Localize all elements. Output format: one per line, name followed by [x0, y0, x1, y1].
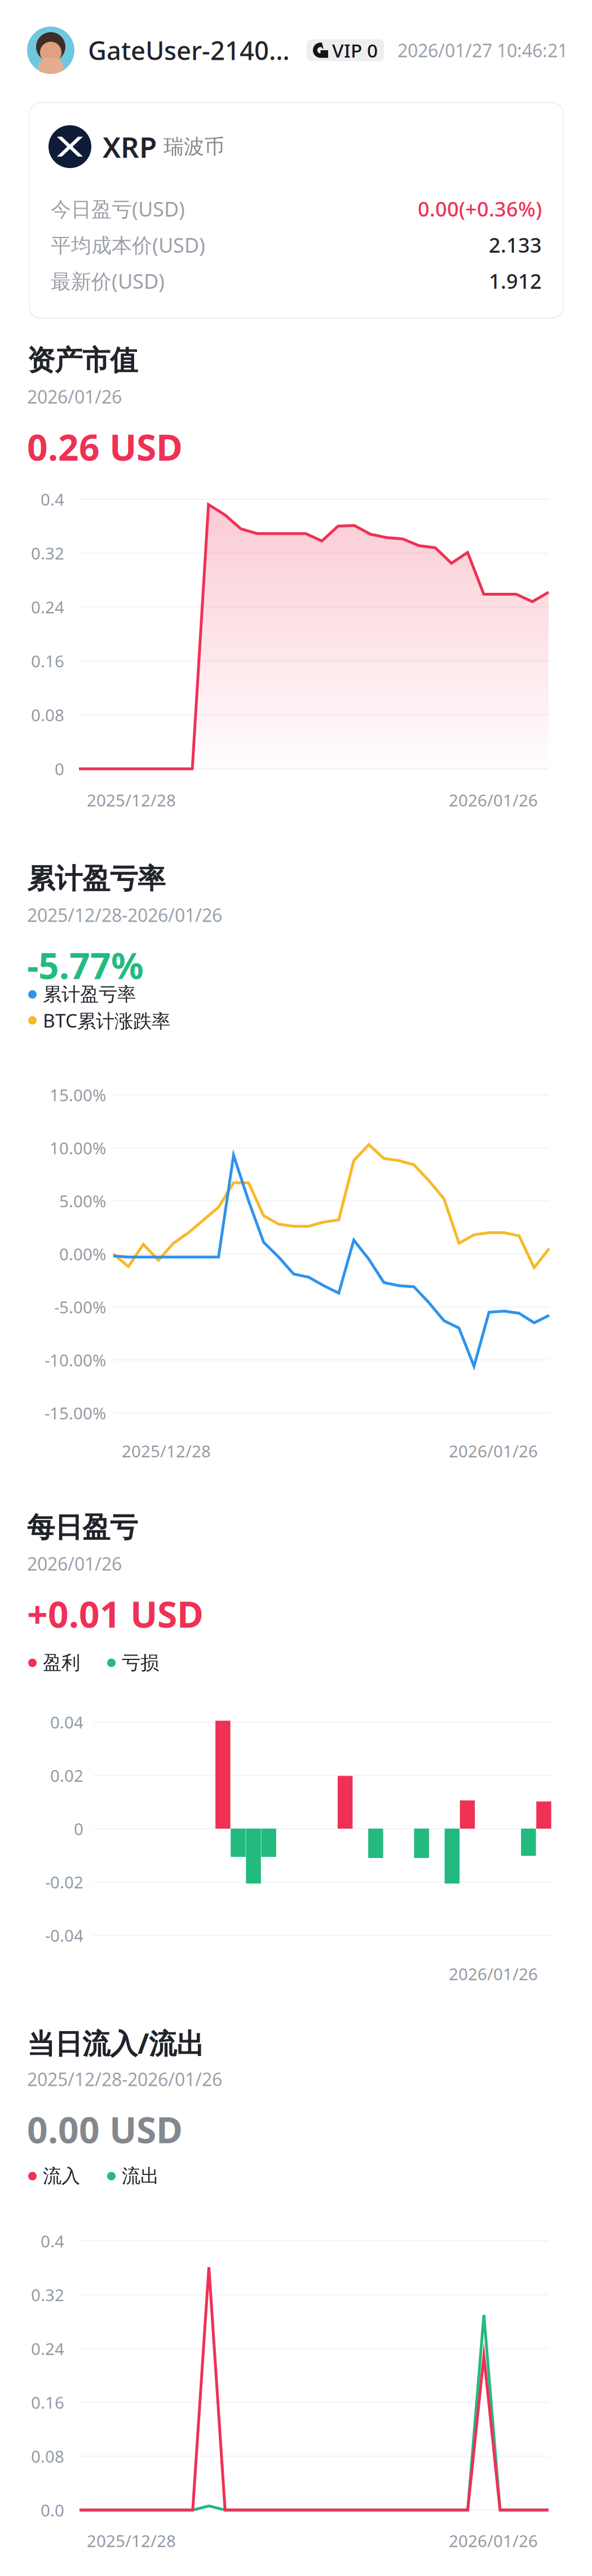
staticText: 每日盈亏: [27, 1510, 138, 1545]
staticText: 15.00%: [50, 1084, 106, 1106]
staticText: 0.00 USD: [27, 2105, 183, 2153]
staticText: 2025/12/28: [87, 2530, 176, 2552]
staticText: 2026/01/26: [27, 1552, 122, 1576]
staticText: 2026/01/26: [449, 1440, 538, 1462]
staticText: 0.32: [31, 2284, 64, 2306]
staticText: 当日流入/流出: [27, 2024, 204, 2061]
staticText: 流出: [122, 2165, 159, 2188]
staticText: -5.00%: [54, 1296, 106, 1318]
staticText: 平均成本价(USD): [51, 231, 205, 258]
staticText: 0.4: [41, 2230, 64, 2252]
staticText: 0.02: [50, 1764, 83, 1786]
staticText: 2.133: [489, 231, 542, 258]
staticText: 2025/12/28-2026/01/26: [27, 903, 222, 927]
staticText: -10.00%: [45, 1349, 106, 1371]
staticText: 0.24: [31, 2338, 64, 2360]
staticText: 0.04: [50, 1711, 83, 1733]
staticText: 今日盈亏(USD): [51, 195, 185, 222]
staticText: 0.24: [31, 596, 64, 618]
staticText: 0.0: [41, 2499, 64, 2521]
staticText: 0.16: [31, 650, 64, 672]
staticText: 盈利: [43, 1651, 80, 1674]
staticText: 0: [55, 758, 64, 780]
staticText: 0.16: [31, 2391, 64, 2413]
staticText: 累计盈亏率: [27, 862, 165, 896]
staticText: 5.00%: [59, 1190, 106, 1212]
staticText: 2026/01/26: [27, 385, 122, 409]
staticText: -15.00%: [45, 1402, 106, 1424]
staticText: 2025/12/28-2026/01/26: [27, 2067, 222, 2091]
staticText: XRP: [103, 128, 157, 166]
staticText: 0.08: [31, 704, 64, 726]
staticText: 0.4: [41, 488, 64, 510]
staticText: 2025/12/28: [122, 1440, 211, 1462]
staticText: 累计盈亏率: [43, 983, 136, 1006]
staticText: -5.77%: [27, 941, 144, 989]
staticText: 2026/01/26: [449, 789, 538, 811]
staticText: 最新价(USD): [51, 267, 165, 294]
staticText: +0.01 USD: [27, 1590, 204, 1638]
staticText: 0: [74, 1818, 83, 1840]
staticText: 瑞波币: [164, 134, 224, 159]
staticText: 1.912: [489, 267, 542, 294]
staticText: VIP 0: [332, 38, 378, 63]
staticText: 0.00(+0.36%): [418, 195, 542, 222]
staticText: BTC累计涨跌率: [43, 1008, 170, 1033]
staticText: 0.26 USD: [27, 423, 183, 471]
staticText: 流入: [43, 2165, 80, 2188]
staticText: 2026/01/26: [449, 1963, 538, 1985]
staticText: 0.08: [31, 2445, 64, 2467]
staticText: -0.04: [45, 1924, 83, 1946]
staticText: 亏损: [122, 1651, 159, 1674]
staticText: GateUser-2140…: [88, 33, 290, 67]
staticText: -0.02: [45, 1871, 83, 1893]
staticText: 2026/01/27 10:46:21: [397, 38, 568, 62]
staticText: 0.32: [31, 542, 64, 564]
staticText: 10.00%: [50, 1137, 106, 1159]
staticText: 2026/01/26: [449, 2530, 538, 2552]
staticText: 资产市值: [27, 343, 138, 378]
staticText: 2025/12/28: [87, 789, 176, 811]
staticText: 0.00%: [59, 1243, 106, 1265]
